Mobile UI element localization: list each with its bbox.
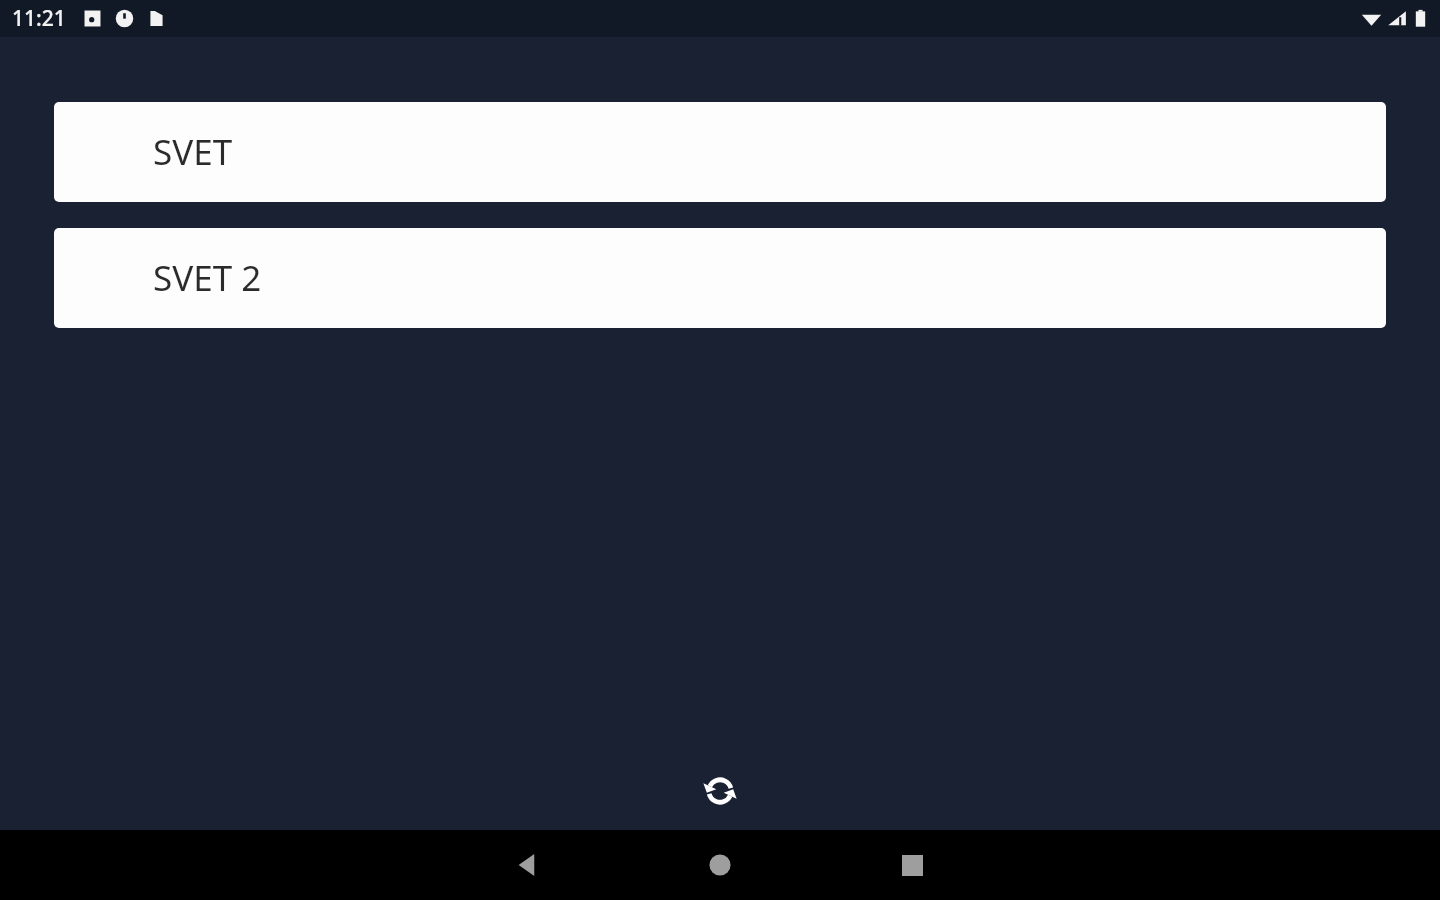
staticText: SVET	[153, 128, 233, 176]
button[interactable]: Home	[685, 830, 755, 900]
button[interactable]: Refresh	[696, 767, 744, 815]
button[interactable]: SVET 2	[54, 228, 1386, 328]
button[interactable]: Recents	[877, 830, 947, 900]
button[interactable]: Back	[493, 830, 563, 900]
staticText: SVET 2	[153, 254, 262, 302]
staticText: 11:21	[12, 4, 66, 33]
button[interactable]: SVET	[54, 102, 1386, 202]
